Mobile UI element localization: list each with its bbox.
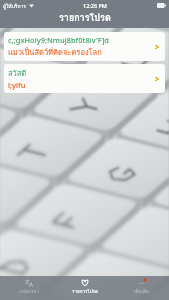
- staticText: l;ylfu: [8, 80, 26, 90]
- staticText: แปลภาษา: [19, 288, 39, 295]
- staticText: รายการโปรด: [72, 288, 98, 295]
- button[interactable]: สวัสดี: [4, 64, 165, 93]
- button[interactable]: c,;gxHoly9;Nmuj8bf0t8iv'F]d: [4, 32, 165, 61]
- button[interactable]: รายการโปรด: [57, 279, 113, 300]
- staticText: 12:26 PM: [83, 2, 107, 9]
- staticText: c,;gxHoly9;Nmuj8bf0t8iv'F]d: [8, 35, 110, 45]
- button[interactable]: Translate: [0, 279, 57, 300]
- staticText: สวัสดี: [8, 67, 27, 79]
- staticText: เพิ่มเติม: [134, 288, 149, 295]
- button[interactable]: More: [113, 279, 169, 300]
- other: Translate: [25, 279, 33, 287]
- staticText: แมวเป็นสัตว์ที่คิดจะครองโลก: [8, 46, 102, 58]
- staticText: รายการโปรด: [59, 11, 111, 25]
- other: More: [137, 279, 145, 287]
- staticText: ผู้ให้บริการ: [3, 2, 27, 10]
